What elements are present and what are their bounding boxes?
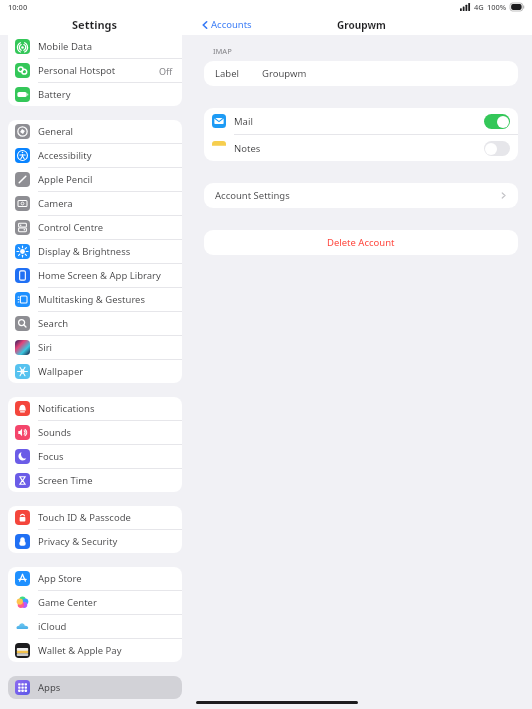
- button[interactable]: Account Settings: [204, 183, 518, 208]
- button[interactable]: Mobile Data: [8, 35, 182, 59]
- staticText: Home Screen & App Library: [38, 269, 173, 282]
- staticText: Mobile Data: [38, 40, 173, 53]
- staticText: Multitasking & Gestures: [38, 293, 173, 306]
- button[interactable]: Sounds: [8, 421, 182, 445]
- staticText: 10:00: [8, 2, 28, 12]
- staticText: Sounds: [38, 426, 173, 439]
- staticText: Search: [38, 317, 173, 330]
- button[interactable]: Battery: [8, 83, 182, 106]
- button[interactable]: Apps: [8, 676, 182, 699]
- button[interactable]: Privacy & Security: [8, 530, 182, 553]
- staticText: Off: [159, 65, 173, 77]
- staticText: Notifications: [38, 402, 173, 415]
- staticText: Touch ID & Passcode: [38, 511, 173, 524]
- button[interactable]: iCloud: [8, 615, 182, 639]
- staticText: 100%: [487, 2, 507, 12]
- staticText: Control Centre: [38, 221, 173, 234]
- button[interactable]: Notes: [204, 135, 518, 161]
- staticText: Privacy & Security: [38, 535, 173, 548]
- button[interactable]: Toggle on: [484, 114, 510, 129]
- button[interactable]: Wallet & Apple Pay: [8, 639, 182, 662]
- button[interactable]: Accounts: [200, 16, 254, 33]
- staticText: Accessibility: [38, 149, 173, 162]
- button[interactable]: Camera: [8, 192, 182, 216]
- button[interactable]: App Store: [8, 567, 182, 591]
- staticText: Game Center: [38, 596, 173, 609]
- staticText: General: [38, 125, 173, 138]
- staticText: 4G: [474, 2, 484, 12]
- staticText: Notes: [234, 142, 484, 155]
- staticText: Account Settings: [215, 189, 501, 202]
- staticText: Accounts: [211, 18, 252, 31]
- staticText: Display & Brightness: [38, 245, 173, 258]
- staticText: Siri: [38, 341, 173, 354]
- staticText: Label: [215, 67, 239, 80]
- staticText: Mail: [234, 115, 484, 128]
- button[interactable]: Personal Hotspot: [8, 59, 182, 83]
- staticText: App Store: [38, 572, 173, 585]
- button[interactable]: Label: [204, 61, 518, 86]
- button[interactable]: Apple Pencil: [8, 168, 182, 192]
- staticText: Groupwm: [337, 18, 386, 32]
- button[interactable]: Accessibility: [8, 144, 182, 168]
- staticText: IMAP: [213, 46, 232, 56]
- button[interactable]: Touch ID & Passcode: [8, 506, 182, 530]
- staticText: Apple Pencil: [38, 173, 173, 186]
- staticText: Apps: [38, 681, 61, 694]
- staticText: Settings: [72, 17, 118, 32]
- button[interactable]: Siri: [8, 336, 182, 360]
- staticText: Groupwm: [262, 67, 307, 80]
- staticText: Screen Time: [38, 474, 173, 487]
- button[interactable]: Multitasking & Gestures: [8, 288, 182, 312]
- staticText: Wallet & Apple Pay: [38, 644, 173, 657]
- staticText: Wallpaper: [38, 365, 173, 378]
- staticText: iCloud: [38, 620, 173, 633]
- button[interactable]: Delete Account: [204, 230, 518, 255]
- staticText: Personal Hotspot: [38, 64, 159, 77]
- staticText: Delete Account: [327, 236, 395, 249]
- button[interactable]: Notifications: [8, 397, 182, 421]
- button[interactable]: General: [8, 120, 182, 144]
- staticText: Camera: [38, 197, 173, 210]
- button[interactable]: Screen Time: [8, 469, 182, 492]
- staticText: Focus: [38, 450, 173, 463]
- button[interactable]: Mail: [204, 108, 518, 134]
- button[interactable]: Wallpaper: [8, 360, 182, 383]
- button[interactable]: Toggle off: [484, 141, 510, 156]
- button[interactable]: Control Centre: [8, 216, 182, 240]
- button[interactable]: Game Center: [8, 591, 182, 615]
- staticText: Battery: [38, 88, 173, 101]
- button[interactable]: Focus: [8, 445, 182, 469]
- button[interactable]: Display & Brightness: [8, 240, 182, 264]
- button[interactable]: Search: [8, 312, 182, 336]
- button[interactable]: Home Screen & App Library: [8, 264, 182, 288]
